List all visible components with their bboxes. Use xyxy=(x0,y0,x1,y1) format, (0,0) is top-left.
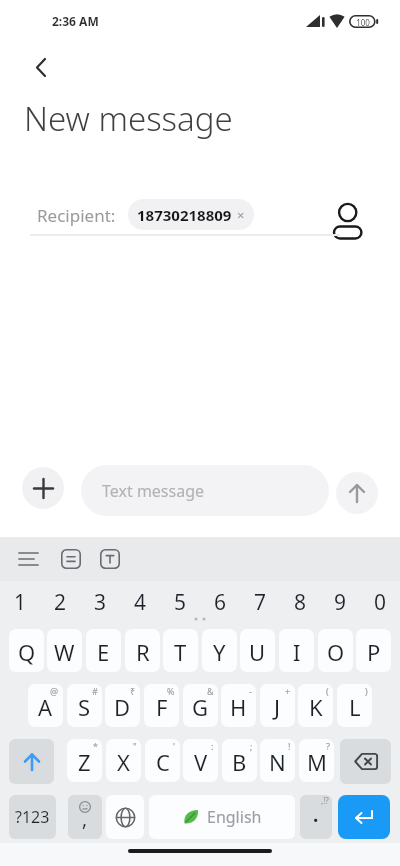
staticText: 7 xyxy=(254,588,267,616)
button[interactable]: 1 xyxy=(0,588,40,616)
button[interactable] xyxy=(340,739,391,784)
button[interactable]: 3 xyxy=(80,588,120,616)
button[interactable] xyxy=(338,795,390,839)
button[interactable] xyxy=(22,467,64,509)
button[interactable] xyxy=(61,549,81,569)
button[interactable]: , xyxy=(68,795,102,839)
button[interactable]: 8 xyxy=(280,588,320,616)
staticText: P xyxy=(367,637,381,667)
button[interactable]: 5 xyxy=(160,588,200,616)
staticText: ? xyxy=(326,740,330,752)
button[interactable]: 18730218809 xyxy=(128,199,254,230)
staticText: 100 xyxy=(350,17,376,28)
button[interactable]: J xyxy=(260,684,295,727)
staticText: H xyxy=(230,692,247,722)
staticText: ( xyxy=(326,685,329,697)
button[interactable]: R xyxy=(125,629,160,672)
button[interactable]: 0 xyxy=(360,588,400,616)
button[interactable]: English xyxy=(149,795,295,839)
button[interactable]: A xyxy=(28,684,63,727)
staticText: . xyxy=(313,802,319,828)
button[interactable]: 7 xyxy=(240,588,280,616)
staticText: 5 xyxy=(174,588,187,616)
button[interactable]: P xyxy=(356,629,391,672)
staticText: ! xyxy=(288,740,291,752)
staticText: , xyxy=(82,806,88,832)
staticText: V xyxy=(194,747,208,777)
staticText: D xyxy=(114,692,131,722)
staticText: T xyxy=(174,637,187,667)
staticText: ) xyxy=(365,685,368,697)
button[interactable] xyxy=(106,795,144,839)
button[interactable]: S xyxy=(67,684,102,727)
staticText: " xyxy=(133,740,137,752)
button[interactable]: B xyxy=(222,739,257,782)
button[interactable]: K xyxy=(298,684,333,727)
staticText: ?123 xyxy=(15,806,50,828)
button[interactable]: Q xyxy=(9,629,44,672)
staticText: - xyxy=(249,685,252,697)
button[interactable]: T xyxy=(163,629,198,672)
staticText: 6 xyxy=(214,588,227,616)
staticText: New message xyxy=(24,96,233,141)
button[interactable]: F xyxy=(144,684,179,727)
button[interactable] xyxy=(336,472,378,514)
staticText: 2 xyxy=(54,588,67,616)
staticText: 18730218809 xyxy=(137,205,232,225)
button[interactable]: D xyxy=(105,684,140,727)
button[interactable]: H xyxy=(221,684,256,727)
staticText: L xyxy=(349,692,361,722)
staticText: 3 xyxy=(94,588,107,616)
staticText: × xyxy=(237,206,245,224)
staticText: 2:36 AM xyxy=(52,13,99,29)
staticText: 9 xyxy=(334,588,347,616)
button[interactable]: C xyxy=(145,739,180,782)
staticText: * xyxy=(93,740,98,752)
button[interactable]: N xyxy=(260,739,295,782)
button[interactable] xyxy=(100,549,120,569)
button[interactable]: O xyxy=(318,629,353,672)
staticText: A xyxy=(38,692,53,722)
staticText: K xyxy=(309,692,323,722)
staticText: C xyxy=(156,747,170,777)
button[interactable] xyxy=(18,549,39,569)
staticText: 4 xyxy=(134,588,147,616)
staticText: % xyxy=(167,685,175,697)
staticText: M xyxy=(307,747,327,777)
button[interactable]: M xyxy=(299,739,334,782)
button[interactable]: Text message xyxy=(81,465,329,516)
staticText: I xyxy=(293,637,301,667)
staticText: Y xyxy=(213,637,226,667)
button[interactable]: 6 xyxy=(200,588,240,616)
button[interactable]: X xyxy=(106,739,141,782)
button[interactable]: 2 xyxy=(40,588,80,616)
staticText: U xyxy=(249,637,266,667)
staticText: ,!? xyxy=(321,795,329,806)
button[interactable]: ,!? xyxy=(300,795,332,839)
button[interactable]: I xyxy=(279,629,314,672)
button[interactable]: V xyxy=(183,739,218,782)
staticText: 0 xyxy=(374,588,387,616)
button[interactable]: 9 xyxy=(320,588,360,616)
staticText: G xyxy=(192,692,209,722)
staticText: 1 xyxy=(14,588,27,616)
staticText: F xyxy=(156,692,168,722)
button[interactable] xyxy=(332,198,364,240)
staticText: R xyxy=(136,637,150,667)
staticText: S xyxy=(78,692,91,722)
button[interactable]: 4 xyxy=(120,588,160,616)
staticText: ₹ xyxy=(130,685,136,697)
staticText: Q xyxy=(18,637,36,667)
button[interactable]: ?123 xyxy=(9,795,56,839)
button[interactable]: Z xyxy=(67,739,102,782)
staticText: Z xyxy=(78,747,91,777)
button[interactable]: Y xyxy=(202,629,237,672)
button[interactable]: E xyxy=(86,629,121,672)
button[interactable]: U xyxy=(240,629,275,672)
button[interactable]: L xyxy=(337,684,372,727)
button[interactable] xyxy=(30,52,52,80)
button[interactable] xyxy=(9,739,54,784)
button[interactable]: G xyxy=(183,684,218,727)
staticText: English xyxy=(207,806,262,828)
button[interactable]: W xyxy=(47,629,82,672)
